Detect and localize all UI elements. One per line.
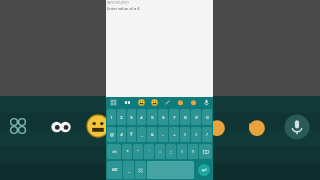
staticText: ! (181, 149, 183, 154)
staticText: ₹ (130, 132, 133, 137)
button[interactable]: @ (107, 127, 116, 142)
staticText: Enter value of a 4 (107, 6, 140, 11)
button[interactable]: , (123, 161, 134, 179)
button[interactable]: 7 (169, 109, 179, 125)
button[interactable]: 2 (117, 109, 126, 125)
button[interactable]: Switch language (135, 161, 146, 179)
staticText: 1 (110, 115, 113, 120)
button[interactable]: Backspace (199, 144, 212, 159)
staticText: ) (195, 132, 197, 137)
button[interactable]: _ (137, 127, 146, 142)
staticText: ( (184, 132, 186, 137)
staticText: ? (192, 149, 194, 154)
button[interactable]: 6 (158, 109, 168, 125)
button[interactable]: 9 (191, 109, 201, 125)
staticText: / (206, 132, 208, 137)
staticText: 6 (162, 115, 165, 120)
button[interactable]: ! (177, 144, 187, 159)
staticText: , (128, 168, 130, 173)
button[interactable]: * (122, 144, 132, 159)
staticText: =\< (112, 150, 117, 154)
button[interactable]: 4 (137, 109, 146, 125)
staticText: # (120, 132, 123, 137)
staticText: ' (149, 149, 150, 154)
button[interactable]: / (202, 127, 212, 142)
button[interactable]: 5 (147, 109, 157, 125)
staticText: 8 (184, 115, 187, 120)
button[interactable]: + (169, 127, 179, 142)
button[interactable]: ABC (107, 161, 122, 179)
staticText: * (126, 149, 129, 154)
button[interactable]: ) (191, 127, 201, 142)
button[interactable]: Enter (198, 164, 210, 176)
staticText: 7 (173, 115, 176, 120)
staticText: : (159, 149, 161, 154)
button[interactable]: : (155, 144, 165, 159)
staticText: _ (141, 132, 143, 137)
button[interactable]: Emoji (134, 97, 148, 108)
staticText: 4 (140, 115, 143, 120)
button[interactable]: Sticker (161, 97, 174, 108)
button[interactable]: Emoji (148, 97, 161, 108)
staticText: 9 (195, 115, 198, 120)
staticText: 2 (120, 115, 123, 120)
staticText: " (137, 149, 139, 154)
button[interactable]: ? (188, 144, 198, 159)
button[interactable]: ' (144, 144, 154, 159)
button[interactable]: Emoji hand (174, 97, 187, 108)
button[interactable]: 1 (107, 109, 116, 125)
staticText: 3 (130, 115, 133, 120)
staticText: ; (170, 149, 172, 154)
button[interactable]: Keyboard layouts (106, 97, 120, 108)
staticText: 5 (151, 115, 154, 120)
staticText: INPUT/OUTPUT (107, 1, 129, 5)
staticText: 0 (206, 115, 209, 120)
button[interactable]: Voice input (200, 97, 213, 108)
button[interactable]: ; (166, 144, 176, 159)
button[interactable]: 0 (202, 109, 212, 125)
button[interactable]: - (158, 127, 168, 142)
staticText: - (162, 132, 164, 137)
button[interactable]: & (147, 127, 157, 142)
button[interactable]: 8 (180, 109, 190, 125)
button[interactable]: ( (180, 127, 190, 142)
button[interactable]: Emoji hand (187, 97, 200, 108)
button[interactable]: GIF (120, 97, 134, 108)
staticText: @ (110, 132, 114, 137)
staticText: & (151, 132, 154, 137)
button[interactable]: =\< (107, 144, 121, 159)
staticText: + (173, 132, 176, 137)
staticText: ABC (112, 168, 118, 172)
button[interactable]: ₹ (127, 127, 136, 142)
button[interactable]: # (117, 127, 126, 142)
button[interactable]: " (133, 144, 143, 159)
button[interactable]: 3 (127, 109, 136, 125)
